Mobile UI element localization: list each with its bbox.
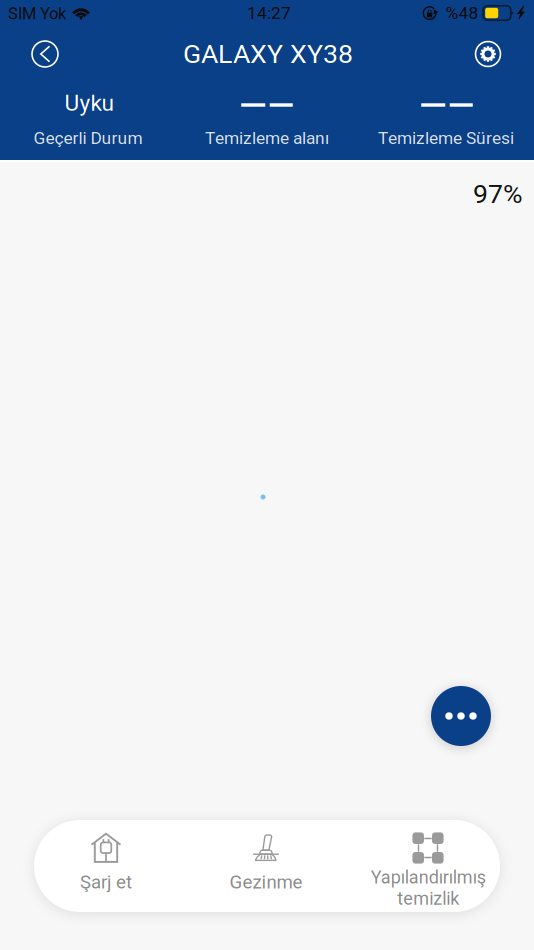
staticText: GALAXY XY38 xyxy=(183,38,353,70)
staticText: Temizleme alanı xyxy=(205,128,329,148)
button[interactable]: Gezinme xyxy=(191,820,341,912)
button[interactable]: Settings xyxy=(464,30,512,78)
staticText: Şarj et xyxy=(80,871,132,893)
staticText: 97% xyxy=(473,178,523,210)
button[interactable]: Back xyxy=(21,30,69,78)
staticText: Yapılandırılmış temizlik xyxy=(370,867,485,909)
staticText: Gezinme xyxy=(229,871,302,893)
button[interactable]: More options xyxy=(431,686,491,746)
button[interactable]: Şarj et xyxy=(31,820,181,912)
staticText: %48 xyxy=(445,3,478,23)
staticText: Uyku xyxy=(64,90,113,116)
staticText: Geçerli Durum xyxy=(33,128,142,148)
staticText: SIM Yok xyxy=(8,4,66,23)
staticText: 14:27 xyxy=(247,3,291,23)
staticText: Temizleme Süresi xyxy=(378,128,514,148)
button[interactable]: Yapılandırılmış temizlik xyxy=(348,820,508,912)
